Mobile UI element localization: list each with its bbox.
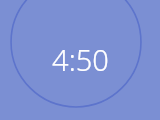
staticText: 4:50 — [52, 40, 109, 79]
button[interactable]: Timer 4:50 — [0, 0, 160, 120]
